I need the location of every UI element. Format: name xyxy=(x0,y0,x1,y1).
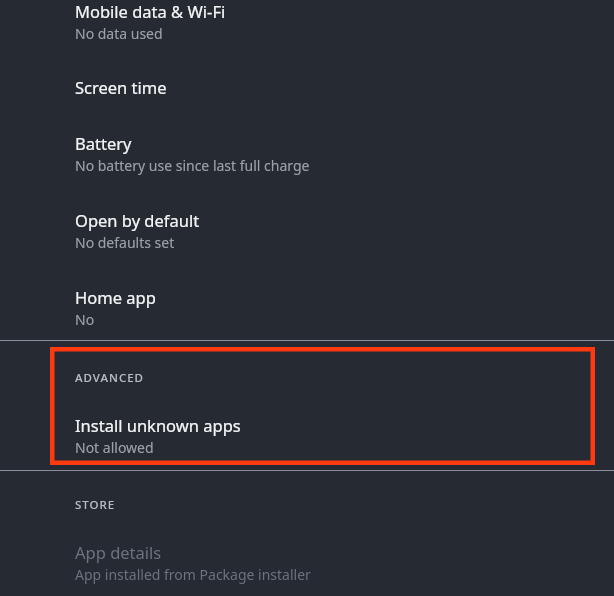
button[interactable]: Install unknown apps xyxy=(0,410,614,460)
button[interactable]: Battery xyxy=(0,126,614,182)
staticText: Battery xyxy=(75,132,132,154)
button[interactable]: Open by default xyxy=(0,203,614,259)
staticText: ADVANCED xyxy=(75,370,145,386)
button[interactable]: Screen time xyxy=(0,68,614,112)
staticText: Home app xyxy=(75,286,156,308)
button[interactable]: App details xyxy=(0,537,614,587)
staticText: Screen time xyxy=(75,76,167,98)
staticText: No battery use since last full charge xyxy=(75,156,310,175)
staticText: App installed from Package installer xyxy=(75,565,311,584)
staticText: STORE xyxy=(75,497,116,513)
staticText: No xyxy=(75,310,95,329)
staticText: No defaults set xyxy=(75,233,175,252)
button[interactable]: Home app xyxy=(0,280,614,336)
staticText: No data used xyxy=(75,24,163,43)
button[interactable]: Mobile data & Wi-Fi xyxy=(0,0,614,48)
staticText: Not allowed xyxy=(75,438,154,457)
staticText: Mobile data & Wi-Fi xyxy=(75,0,226,22)
staticText: Open by default xyxy=(75,209,200,231)
staticText: App details xyxy=(75,541,162,563)
staticText: Install unknown apps xyxy=(75,414,241,436)
